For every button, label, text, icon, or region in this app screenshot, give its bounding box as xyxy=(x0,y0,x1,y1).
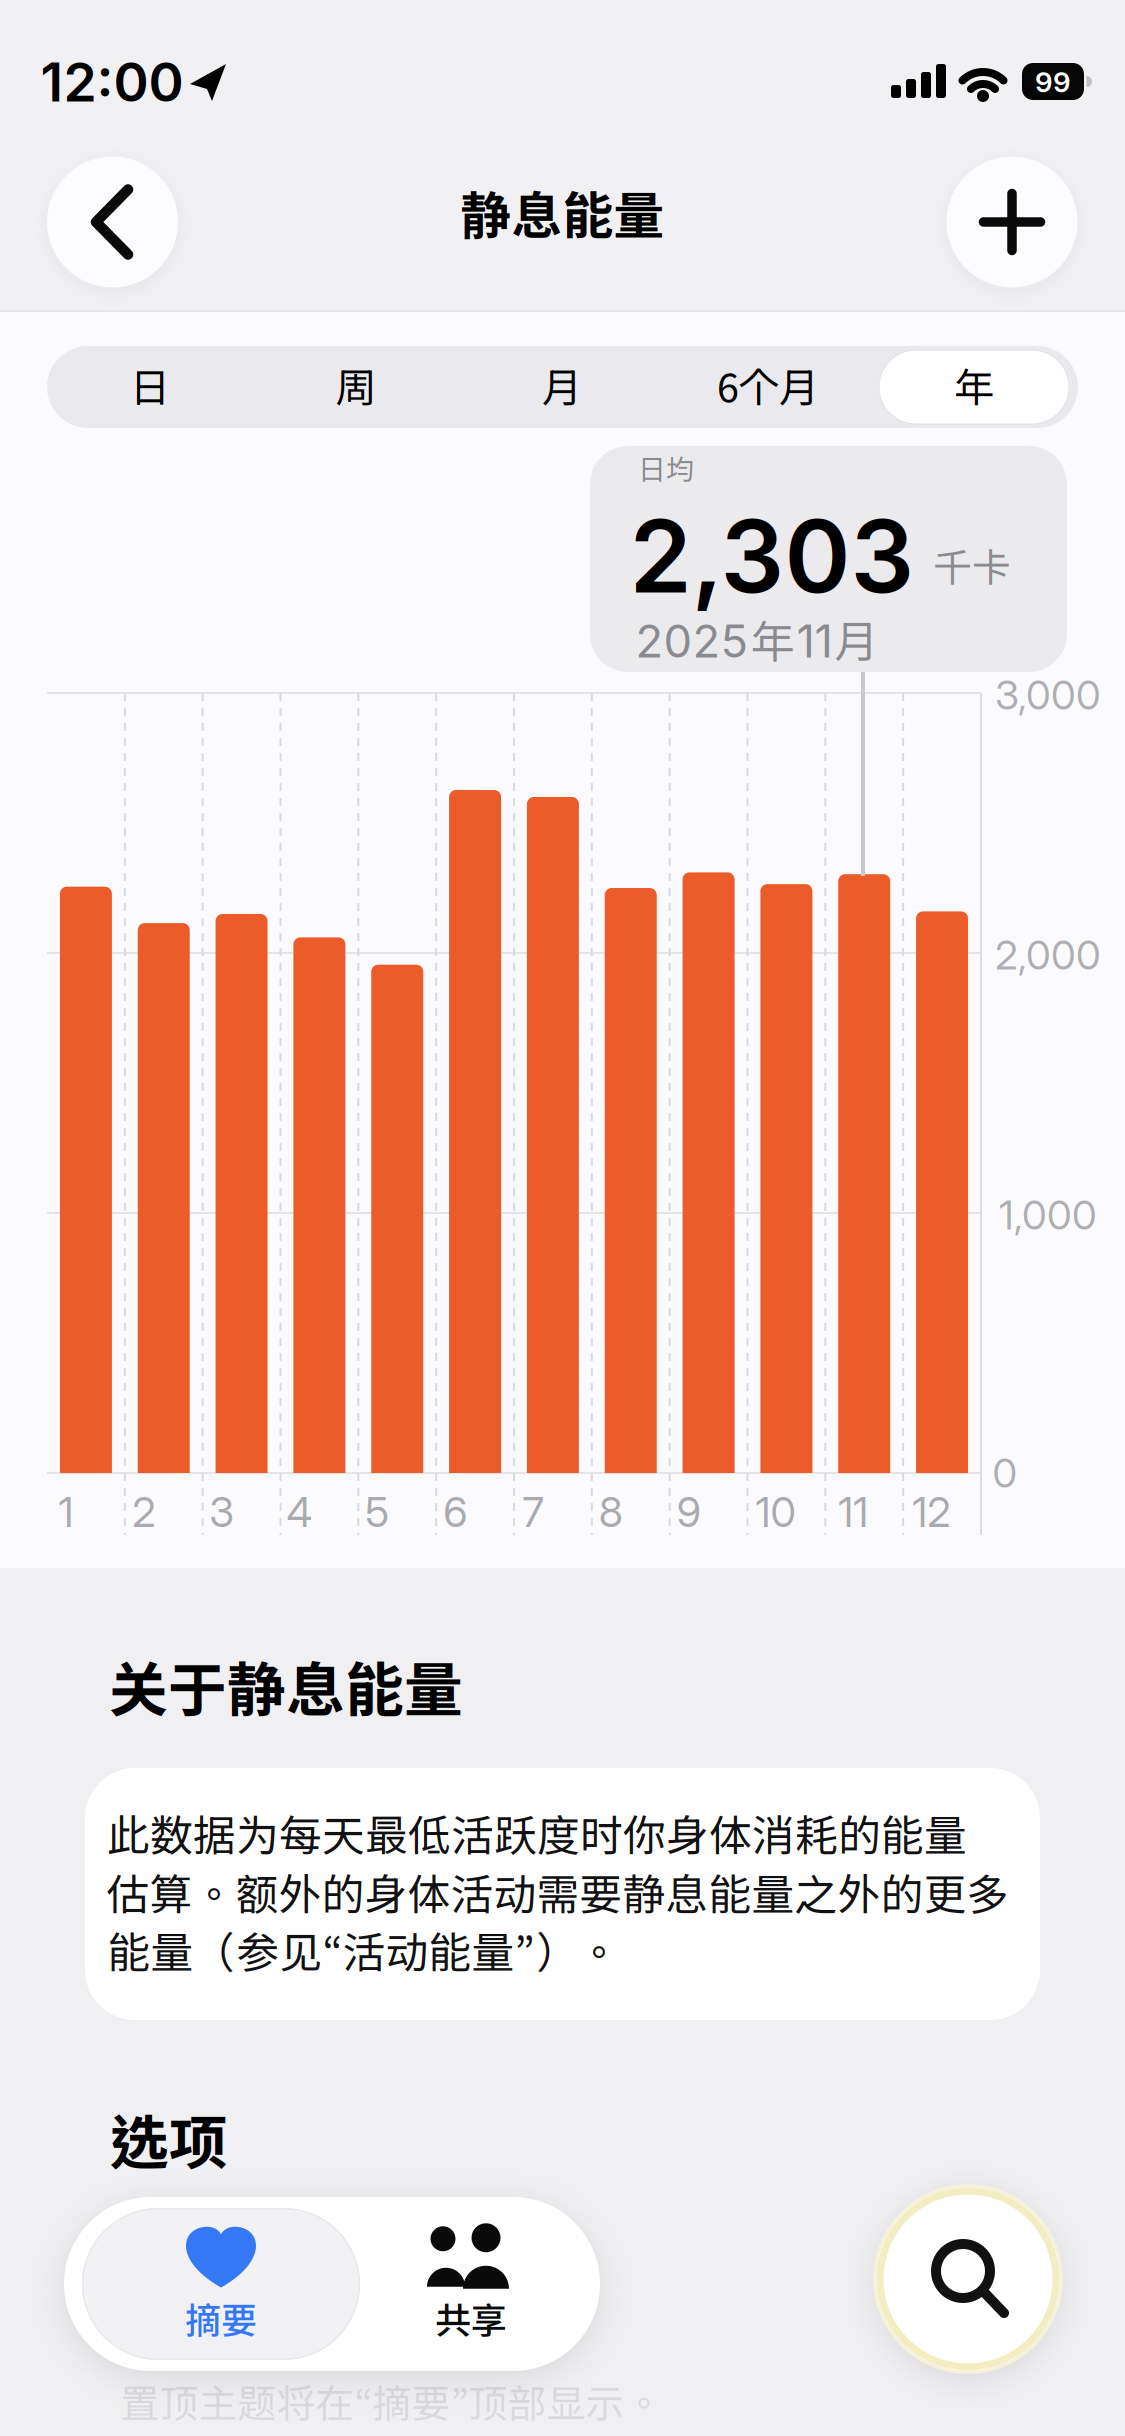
staticText: 静息能量 xyxy=(460,185,664,245)
staticText: 1,000 xyxy=(999,1191,1097,1239)
staticText: 置顶主题将在“摘要”顶部显示。 xyxy=(120,2380,663,2426)
staticText: 3,000 xyxy=(995,671,1101,719)
staticText: 估算。额外的身体活动需要静息能量之外的更多 xyxy=(106,1869,1009,1919)
staticText: 能量（参见“活动能量”）。 xyxy=(107,1927,620,1977)
staticText: 2,000 xyxy=(995,931,1101,979)
button[interactable]: 月 xyxy=(459,346,665,428)
staticText: 4 xyxy=(286,1487,312,1537)
staticText: 6个月 xyxy=(717,363,819,411)
staticText: 0 xyxy=(992,1449,1017,1497)
staticText: 12:00 xyxy=(40,50,183,114)
staticText: 摘要 xyxy=(185,2299,257,2341)
button[interactable]: 年 xyxy=(878,349,1070,425)
staticText: 3 xyxy=(209,1487,234,1537)
staticText: 9 xyxy=(677,1487,701,1537)
staticText: 12 xyxy=(912,1487,950,1537)
button[interactable]: 6个月 xyxy=(665,346,871,428)
button[interactable]: 共享 xyxy=(356,2208,586,2360)
staticText: 8 xyxy=(599,1487,623,1537)
staticText: 年 xyxy=(954,363,994,411)
staticText: 年 xyxy=(750,615,794,667)
staticText: 选项 xyxy=(110,2107,228,2177)
staticText: 周 xyxy=(336,363,376,411)
staticText: 1 xyxy=(58,1487,73,1537)
staticText: 7 xyxy=(522,1487,543,1537)
staticText: 6 xyxy=(443,1487,467,1537)
staticText: 11 xyxy=(838,1487,868,1537)
staticText: 日 xyxy=(130,363,170,411)
staticText: 此数据为每天最低活跃度时你身体消耗的能量 xyxy=(107,1810,967,1860)
staticText: 月 xyxy=(834,615,878,667)
staticText: 共享 xyxy=(435,2299,507,2341)
staticText: 2 xyxy=(132,1487,155,1537)
staticText: 11 xyxy=(796,614,832,668)
button[interactable]: 添加数据 xyxy=(946,156,1077,287)
staticText: 日均 xyxy=(638,452,694,485)
button[interactable]: 返回 xyxy=(47,156,178,287)
button[interactable]: 周 xyxy=(253,346,459,428)
button[interactable]: 摘要 xyxy=(82,2208,360,2360)
staticText: 10 xyxy=(755,1487,795,1537)
staticText: 99 xyxy=(1035,65,1071,99)
staticText: 千卡 xyxy=(933,544,1011,590)
staticText: 月 xyxy=(542,363,582,411)
button[interactable]: 日 xyxy=(47,346,253,428)
staticText: 5 xyxy=(365,1487,389,1537)
button[interactable]: 搜索 xyxy=(876,2187,1060,2371)
staticText: 2025 xyxy=(635,614,748,668)
staticText: 关于静息能量 xyxy=(109,1654,463,1724)
staticText: 2,303 xyxy=(629,495,914,616)
